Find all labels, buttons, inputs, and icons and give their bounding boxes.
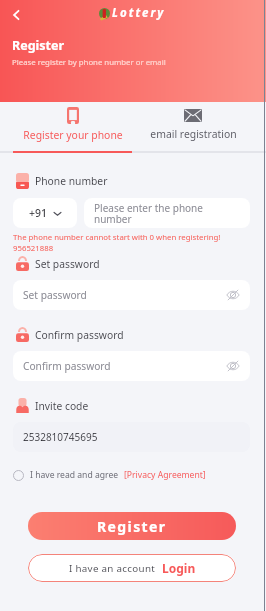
button[interactable]: email registration — [133, 102, 253, 153]
button[interactable]: Show password — [226, 288, 240, 302]
button[interactable]: Set password — [13, 280, 250, 310]
button[interactable]: Register your phone — [13, 102, 133, 153]
staticText: Phone number — [35, 174, 108, 188]
button[interactable]: Please enter the phone number — [84, 198, 250, 228]
button[interactable]: Register — [28, 512, 236, 540]
staticText: Register — [97, 517, 167, 536]
button[interactable]: Confirm password — [13, 351, 250, 381]
staticText: I have read and agree — [30, 469, 119, 481]
staticText: Set password — [35, 257, 100, 271]
staticText: [Privacy Agreement] — [124, 469, 206, 481]
staticText: Register — [12, 37, 65, 54]
button[interactable]: I have read and agree — [13, 469, 206, 481]
staticText: 956521888 — [13, 243, 54, 254]
staticText: Confirm password — [23, 359, 111, 373]
staticText: Set password — [23, 288, 87, 302]
staticText: +91 — [29, 206, 48, 220]
button[interactable]: Show password — [226, 359, 240, 373]
staticText: Please enter the phone number — [94, 201, 240, 226]
staticText: Please register by phone number or email — [12, 57, 166, 68]
button[interactable]: I have an account — [28, 554, 236, 582]
button[interactable]: +91 — [13, 198, 77, 228]
staticText: I have an account — [69, 562, 156, 575]
staticText: Lottery — [112, 5, 166, 21]
staticText: The phone number cannot start with 0 whe… — [13, 232, 221, 243]
staticText: Login — [162, 560, 196, 576]
button[interactable]: 2532810745695 — [13, 422, 250, 452]
staticText: Invite code — [35, 399, 89, 413]
button[interactable]: Back — [4, 3, 28, 27]
staticText: Register your phone — [23, 128, 123, 142]
staticText: 2532810745695 — [23, 430, 98, 444]
staticText: Confirm password — [35, 328, 124, 342]
staticText: email registration — [150, 127, 237, 141]
